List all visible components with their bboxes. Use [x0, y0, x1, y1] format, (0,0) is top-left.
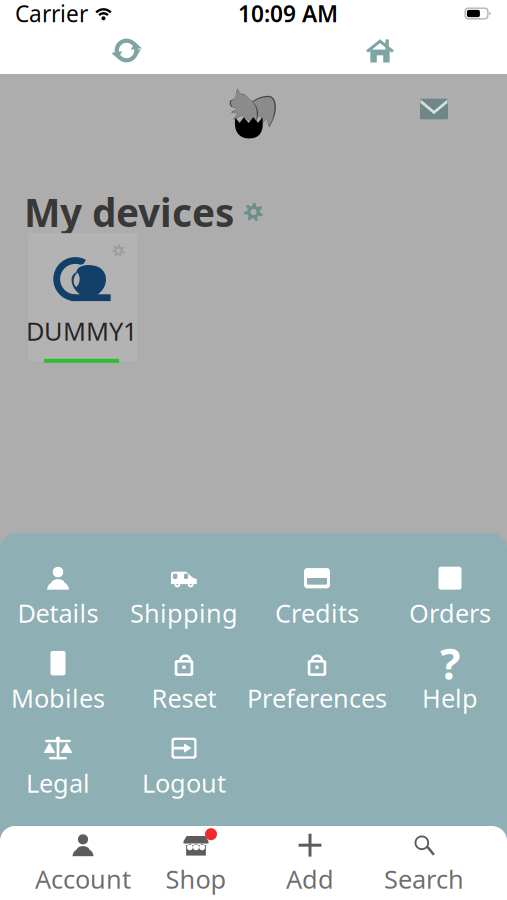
button[interactable]: Shipping [130, 566, 238, 626]
button[interactable]: Home [253, 27, 507, 74]
staticText: DUMMY1 [26, 314, 137, 348]
staticText: Logout [142, 766, 226, 800]
staticText: Account [35, 862, 131, 896]
button[interactable]: Messages [420, 99, 448, 119]
staticText: Shop [165, 862, 226, 896]
staticText: Reset [151, 681, 216, 715]
staticText: Preferences [247, 681, 387, 715]
staticText: ? [440, 635, 460, 691]
staticText: Shipping [130, 596, 238, 630]
button[interactable]: Logout [142, 736, 226, 796]
button[interactable]: Preferences [247, 651, 387, 711]
staticText: Add [286, 862, 334, 896]
button[interactable]: ? [422, 651, 478, 711]
button[interactable]: Add [254, 835, 366, 891]
staticText: Legal [26, 766, 90, 800]
button[interactable]: Shop [140, 835, 252, 891]
button[interactable]: Details [17, 566, 98, 626]
staticText: My devices [24, 186, 234, 238]
staticText: Mobiles [11, 681, 105, 715]
staticText: Details [17, 596, 98, 630]
staticText: Orders [409, 596, 491, 630]
button[interactable]: Reset [151, 651, 216, 711]
button[interactable]: Credits [275, 566, 359, 626]
button[interactable]: Orders [409, 566, 491, 626]
button[interactable]: Legal [26, 736, 90, 796]
staticText: Help [422, 681, 478, 715]
staticText: 10:09 AM [238, 0, 338, 28]
button[interactable]: Account [27, 835, 139, 891]
button[interactable]: Search [368, 835, 480, 891]
button[interactable]: Refresh [0, 27, 253, 74]
staticText: Carrier [15, 0, 88, 28]
button[interactable]: DUMMY1 [27, 238, 136, 366]
button[interactable]: Mobiles [11, 651, 105, 711]
staticText: Credits [275, 596, 359, 630]
button[interactable]: Device settings [244, 202, 263, 221]
staticText: Search [384, 862, 464, 896]
